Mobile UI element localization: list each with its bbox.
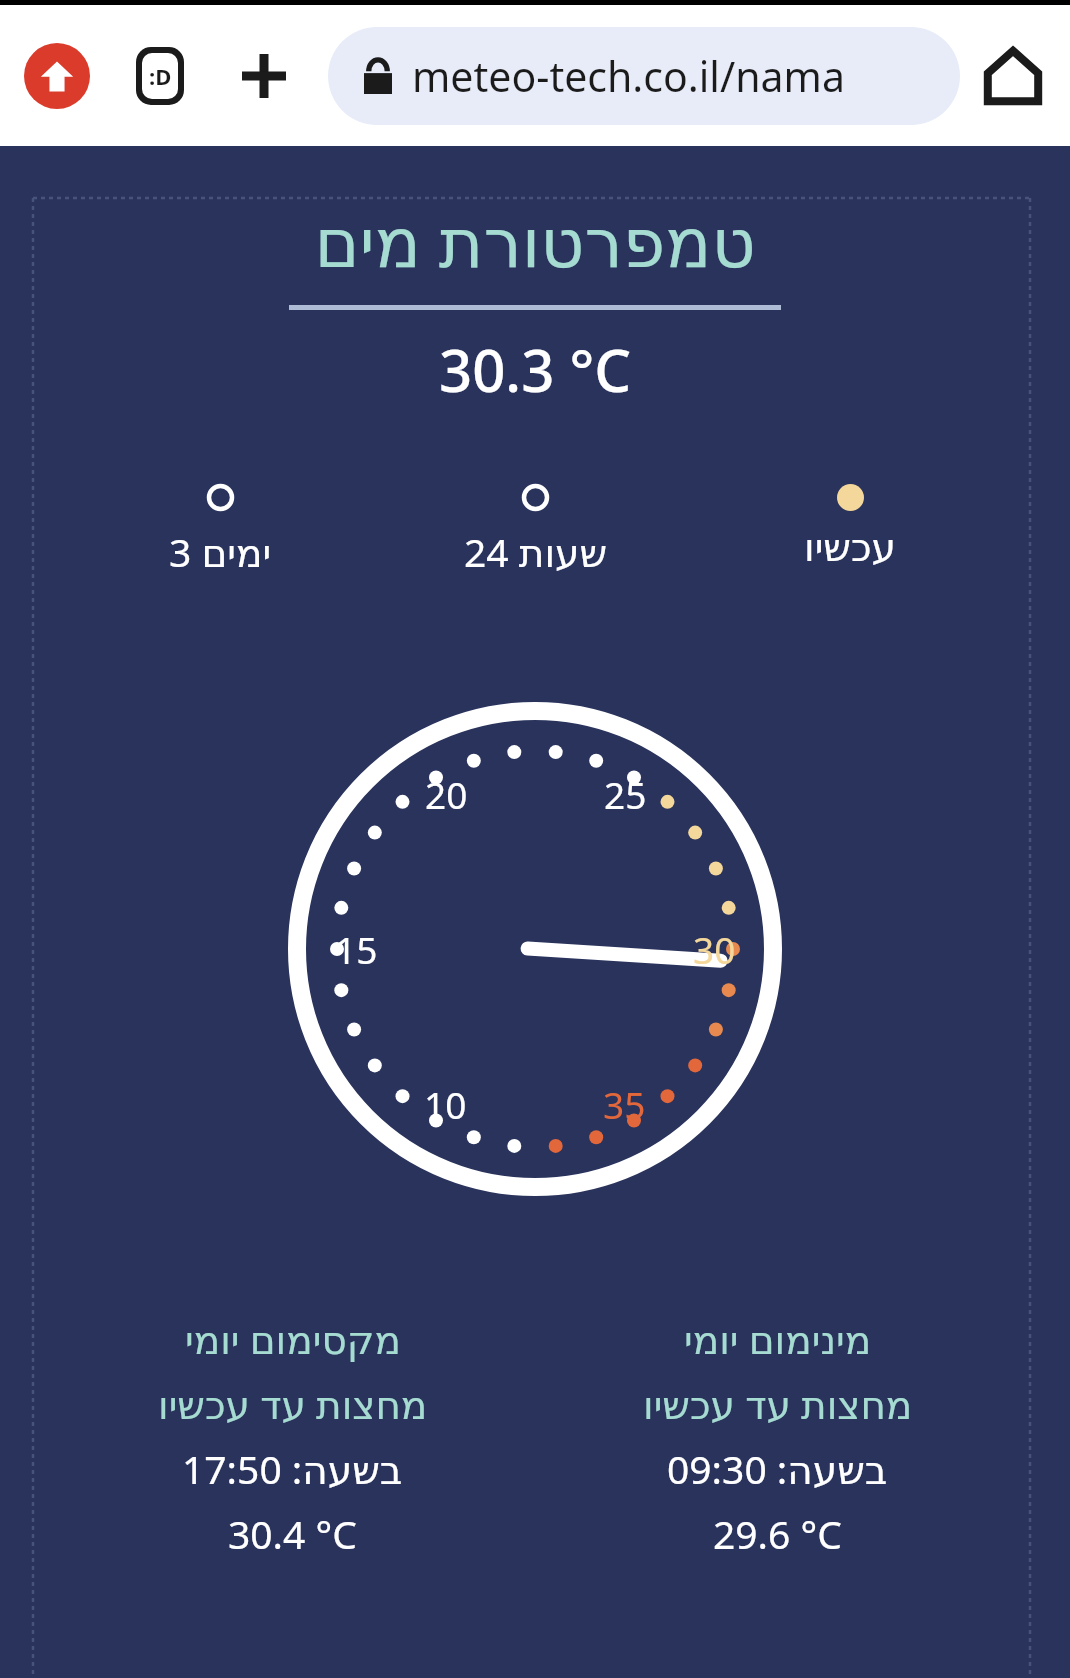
staticText: 29.6 °C bbox=[713, 1507, 842, 1560]
staticText: מינימום יומי bbox=[684, 1312, 872, 1365]
staticText: מחצות עד עכשיו bbox=[158, 1377, 428, 1430]
staticText: בשעה: 09:30 bbox=[667, 1442, 888, 1495]
staticText: :D bbox=[149, 61, 172, 91]
button[interactable]: Home bbox=[974, 37, 1052, 115]
staticText: מחצות עד עכשיו bbox=[643, 1377, 913, 1430]
staticText: 30.3 °C bbox=[439, 330, 631, 409]
staticText: 30 bbox=[693, 924, 736, 974]
button[interactable]: 3 ימים bbox=[62, 481, 378, 581]
button[interactable]: Tabs bbox=[128, 44, 192, 108]
staticText: מקסימום יומי bbox=[185, 1312, 401, 1365]
staticText: 35 bbox=[603, 1079, 646, 1129]
button[interactable]: New tab bbox=[232, 44, 296, 108]
staticText: עכשיו bbox=[804, 525, 897, 570]
staticText: בשעה: 17:50 bbox=[182, 1442, 403, 1495]
button[interactable]: 24 שעות bbox=[378, 481, 693, 581]
staticText: 3 ימים bbox=[169, 525, 272, 578]
staticText: 15 bbox=[335, 924, 378, 974]
staticText: 10 bbox=[424, 1079, 467, 1129]
staticText: 24 שעות bbox=[464, 525, 608, 578]
button[interactable]: Update available bbox=[24, 43, 90, 109]
button[interactable]: meteo-tech.co.il/nama bbox=[328, 27, 960, 125]
staticText: 20 bbox=[425, 769, 468, 819]
staticText: טמפרטורת מים bbox=[314, 194, 756, 287]
staticText: 30.4 °C bbox=[228, 1507, 357, 1560]
staticText: meteo-tech.co.il/nama bbox=[412, 48, 845, 104]
button[interactable]: עכשיו bbox=[693, 481, 1008, 573]
staticText: 25 bbox=[604, 769, 647, 819]
